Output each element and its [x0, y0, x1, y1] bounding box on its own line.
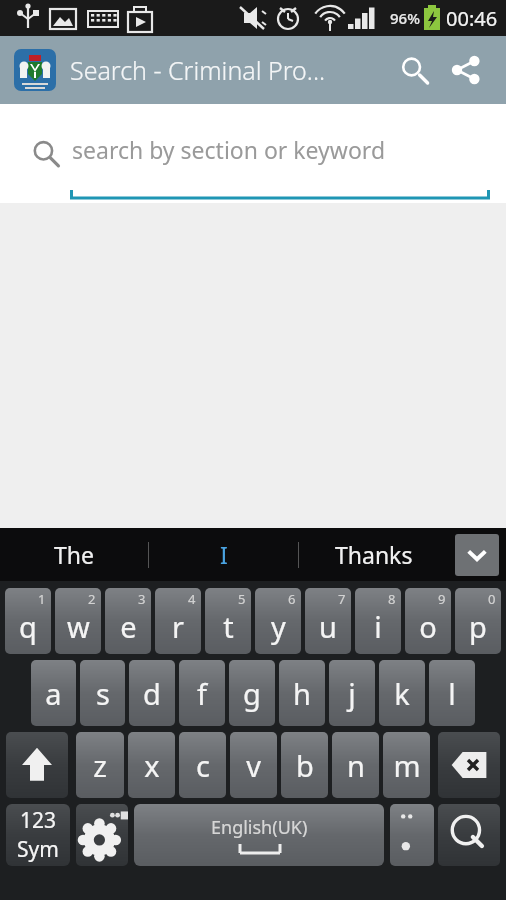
staticText: The [54, 539, 94, 570]
staticText: s [96, 674, 110, 713]
staticText: 5 [238, 590, 246, 608]
button[interactable]: s [80, 660, 125, 726]
button[interactable]: Share [440, 44, 492, 96]
staticText: 9 [438, 590, 446, 608]
staticText: r [172, 607, 184, 646]
staticText: u [319, 607, 337, 646]
staticText: English(UK) [211, 815, 308, 840]
button[interactable]: App icon [14, 49, 56, 91]
button[interactable]: 4 [155, 588, 201, 654]
staticText: 3 [138, 590, 146, 608]
button[interactable]: 9 [405, 588, 451, 654]
button[interactable]: Search [438, 804, 500, 866]
staticText: i [374, 607, 382, 646]
button[interactable]: z [76, 732, 124, 798]
button[interactable]: 3 [105, 588, 151, 654]
staticText: v [246, 746, 261, 785]
staticText: a [45, 674, 62, 713]
staticText: Search - Criminal Pro... [70, 53, 388, 87]
button[interactable]: h [279, 660, 325, 726]
staticText: q [19, 607, 37, 646]
staticText: 96% [390, 8, 420, 28]
button[interactable]: Backspace [438, 732, 500, 798]
staticText: Sym [17, 835, 59, 864]
button[interactable]: n [332, 732, 379, 798]
staticText: m [393, 746, 421, 785]
button[interactable]: x [128, 732, 175, 798]
button[interactable]: 1 [5, 588, 51, 654]
staticText: t [223, 607, 234, 646]
staticText: o [419, 607, 437, 646]
button[interactable]: j [329, 660, 375, 726]
button[interactable]: Keyboard settings [76, 804, 128, 866]
staticText: l [448, 674, 456, 713]
button[interactable]: Thanks [299, 528, 448, 581]
staticText: w [67, 607, 90, 646]
staticText: h [293, 674, 311, 713]
staticText: 1 [38, 590, 46, 608]
button[interactable]: 123 [6, 804, 70, 866]
staticText: b [296, 746, 314, 785]
staticText: n [347, 746, 365, 785]
button[interactable]: I [149, 528, 298, 581]
staticText: z [93, 746, 107, 785]
button[interactable]: c [179, 732, 226, 798]
button[interactable]: 7 [305, 588, 351, 654]
staticText: 0 [488, 590, 496, 608]
staticText: c [196, 746, 210, 785]
button[interactable]: Space [134, 804, 384, 866]
staticText: 4 [188, 590, 196, 608]
staticText: 6 [288, 590, 296, 608]
button[interactable]: 8 [355, 588, 401, 654]
staticText: 00:46 [446, 5, 498, 32]
button[interactable]: 6 [255, 588, 301, 654]
staticText: x [144, 746, 160, 785]
button[interactable]: Punctuation [390, 804, 434, 866]
button[interactable]: d [129, 660, 175, 726]
button[interactable]: The [0, 528, 148, 581]
button[interactable]: k [379, 660, 425, 726]
staticText: d [143, 674, 161, 713]
staticText: 123 [20, 806, 57, 835]
button[interactable]: v [230, 732, 277, 798]
staticText: search by section or keyword [72, 134, 386, 165]
staticText: p [469, 607, 487, 646]
button[interactable]: a [31, 660, 76, 726]
button[interactable]: f [179, 660, 225, 726]
staticText: j [348, 674, 356, 713]
button[interactable]: m [383, 732, 430, 798]
staticText: 2 [88, 590, 96, 608]
staticText: I [220, 539, 228, 570]
button[interactable]: g [229, 660, 275, 726]
staticText: 8 [388, 590, 396, 608]
staticText: Thanks [335, 539, 413, 570]
button[interactable]: l [429, 660, 475, 726]
staticText: e [120, 607, 137, 646]
button[interactable]: Search [388, 44, 440, 96]
staticText: f [197, 674, 207, 713]
button[interactable]: search by section or keyword [72, 134, 490, 173]
staticText: k [394, 674, 410, 713]
staticText: y [271, 607, 286, 646]
button[interactable]: Expand suggestions [455, 534, 499, 576]
button[interactable]: 2 [55, 588, 101, 654]
staticText: g [243, 674, 261, 713]
button[interactable]: b [281, 732, 328, 798]
button[interactable]: Shift [6, 732, 68, 798]
button[interactable]: 5 [205, 588, 251, 654]
button[interactable]: 0 [455, 588, 501, 654]
staticText: 7 [338, 590, 346, 608]
